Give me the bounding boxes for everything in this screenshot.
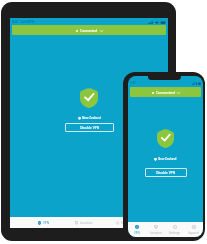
staticText: Disable VPN bbox=[156, 170, 176, 175]
staticText: Connected bbox=[156, 90, 175, 95]
staticText: VPN bbox=[134, 231, 140, 235]
staticText: Settings bbox=[169, 231, 180, 235]
button[interactable]: Disable VPN bbox=[145, 168, 187, 177]
button[interactable]: Connected bbox=[12, 25, 166, 35]
button[interactable]: VPN bbox=[24, 217, 64, 228]
button[interactable]: VPN bbox=[128, 222, 146, 237]
button[interactable]: Settings bbox=[165, 222, 184, 237]
staticText: VPN bbox=[43, 221, 50, 225]
staticText: New Zealand bbox=[82, 116, 101, 120]
button[interactable]: Location bbox=[146, 222, 165, 237]
staticText: Settings bbox=[121, 221, 133, 225]
button[interactable]: Support bbox=[144, 217, 168, 228]
button[interactable]: Settings bbox=[104, 217, 144, 228]
button[interactable]: Connected bbox=[130, 87, 201, 97]
staticText: 9:41 SafeVPN bbox=[12, 19, 34, 24]
button[interactable]: Support bbox=[184, 222, 203, 237]
staticText: Support bbox=[153, 221, 165, 225]
staticText: Connected bbox=[80, 28, 98, 33]
staticText: Location bbox=[150, 231, 162, 235]
staticText: Location bbox=[80, 221, 93, 225]
staticText: New Zealand bbox=[158, 157, 177, 161]
staticText: 9:41 bbox=[130, 81, 137, 85]
button[interactable]: Disable VPN bbox=[65, 123, 114, 132]
button[interactable]: Location bbox=[64, 217, 104, 228]
staticText: Disable VPN bbox=[80, 125, 100, 130]
staticText: Support bbox=[188, 231, 199, 235]
